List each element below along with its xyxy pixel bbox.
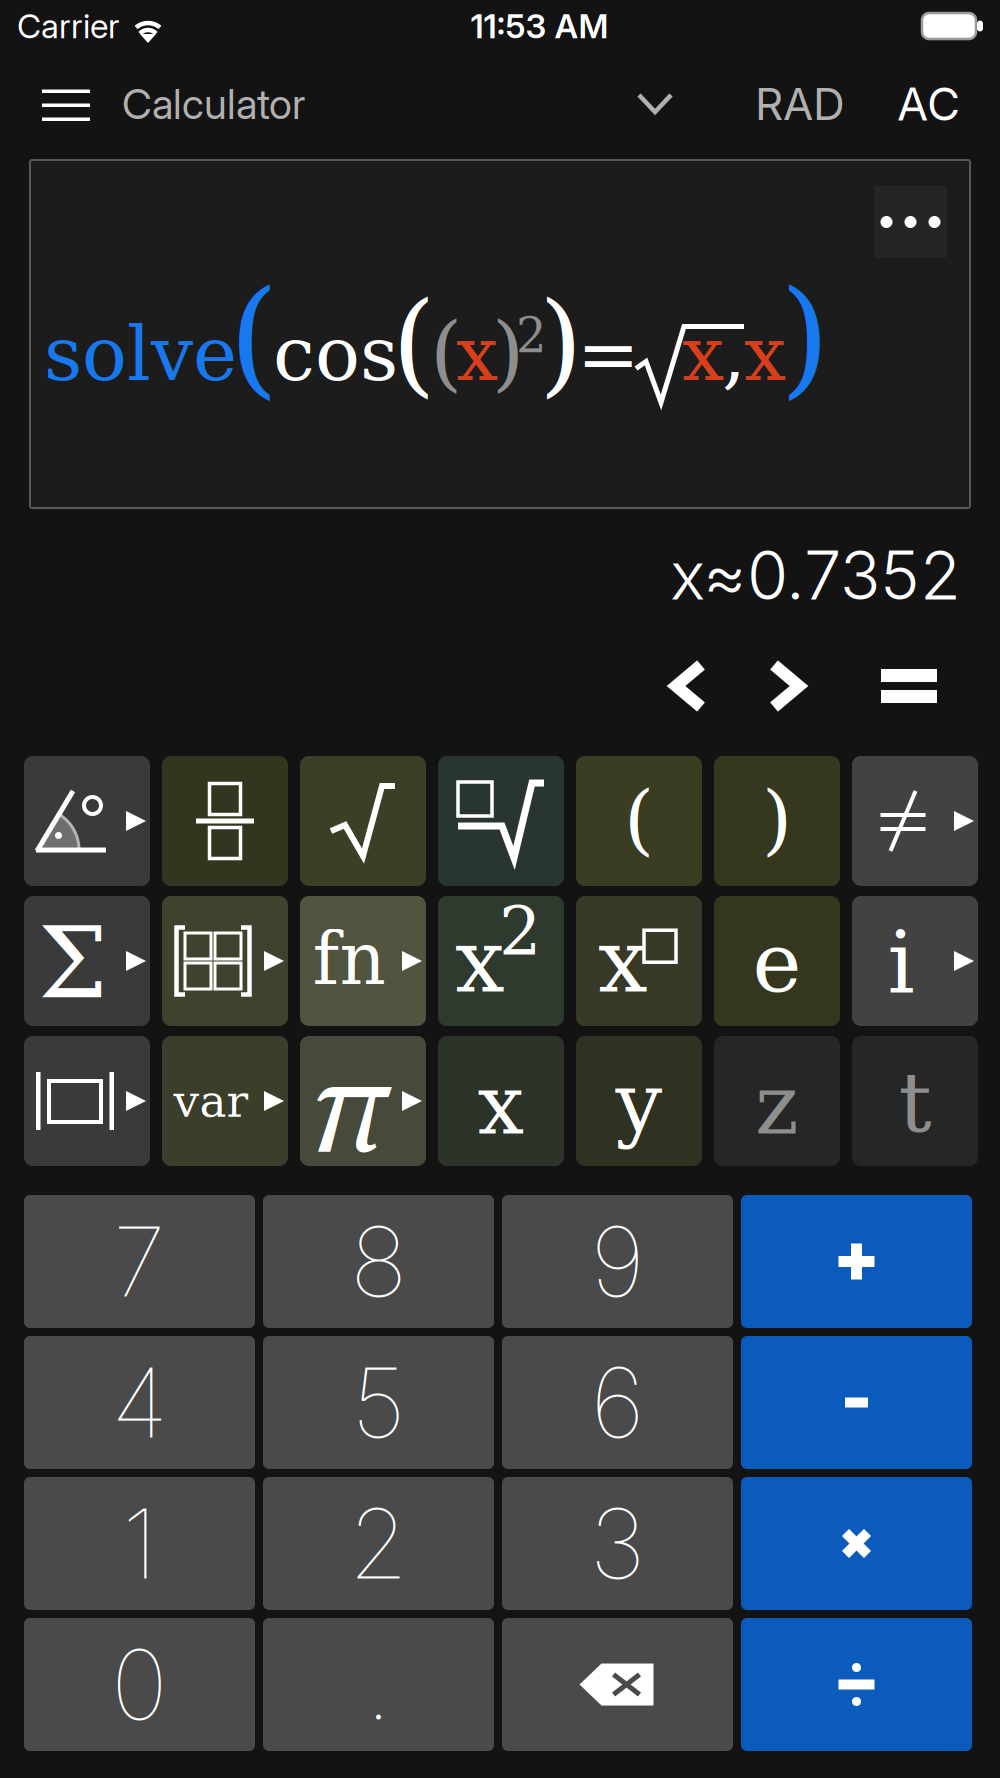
button[interactable]: RAD bbox=[743, 65, 857, 143]
button[interactable]: Divide bbox=[741, 1618, 972, 1751]
button[interactable]: 9 bbox=[502, 1195, 733, 1328]
staticText: ) bbox=[762, 774, 792, 864]
staticText: ( bbox=[392, 278, 436, 408]
staticText: 5 bbox=[351, 1344, 405, 1461]
button[interactable]: Multiply bbox=[741, 1477, 972, 1610]
staticText: ) bbox=[539, 278, 583, 408]
button[interactable]: i bbox=[852, 896, 978, 1026]
button[interactable]: Square root bbox=[300, 756, 426, 886]
button[interactable]: ( bbox=[576, 756, 702, 886]
button[interactable]: Calculator bbox=[104, 67, 323, 141]
button[interactable]: Add bbox=[741, 1195, 972, 1328]
button[interactable]: 5 bbox=[263, 1336, 494, 1469]
button[interactable]: ) bbox=[714, 756, 840, 886]
button[interactable]: 3 bbox=[502, 1477, 733, 1610]
button[interactable]: Subtract bbox=[741, 1336, 972, 1469]
staticText: 2 bbox=[499, 893, 541, 970]
staticText: ( bbox=[624, 774, 654, 864]
staticText: x≈0.7352 bbox=[670, 535, 961, 616]
button[interactable]: 6 bbox=[502, 1336, 733, 1469]
button[interactable]: Next bbox=[750, 641, 823, 731]
staticText: AC bbox=[897, 77, 960, 131]
staticText: RAD bbox=[755, 77, 845, 131]
button[interactable]: Menu bbox=[28, 74, 104, 134]
button[interactable]: 1 bbox=[24, 1477, 255, 1610]
staticText: i bbox=[887, 913, 914, 1013]
button[interactable]: 8 bbox=[263, 1195, 494, 1328]
staticText: cos bbox=[273, 311, 398, 397]
button[interactable]: e bbox=[714, 896, 840, 1026]
staticText: , bbox=[722, 311, 746, 397]
button[interactable]: var bbox=[162, 1036, 288, 1166]
button[interactable]: Σ bbox=[24, 896, 150, 1026]
staticText: y bbox=[615, 1055, 662, 1151]
staticText: 1 bbox=[122, 1485, 157, 1602]
staticText: e bbox=[752, 915, 801, 1011]
button[interactable]: . bbox=[263, 1618, 494, 1751]
staticText: fn bbox=[312, 917, 385, 1001]
button[interactable]: Angle bbox=[24, 756, 150, 886]
staticText: 0 bbox=[111, 1626, 168, 1743]
staticText: solve bbox=[44, 311, 237, 397]
button[interactable]: 4 bbox=[24, 1336, 255, 1469]
button[interactable]: y bbox=[576, 1036, 702, 1166]
staticText: ( bbox=[430, 304, 462, 400]
staticText: 3 bbox=[589, 1485, 645, 1602]
button[interactable]: 2 bbox=[263, 1477, 494, 1610]
button[interactable]: Not equal bbox=[852, 756, 978, 886]
button[interactable]: t bbox=[852, 1036, 978, 1166]
staticText: 11:53 AM bbox=[470, 6, 608, 46]
staticText: 2 bbox=[516, 308, 547, 363]
button[interactable]: Delete bbox=[502, 1618, 733, 1751]
staticText: 6 bbox=[590, 1344, 644, 1461]
staticText: = bbox=[577, 311, 640, 397]
staticText: 2 bbox=[348, 1485, 408, 1602]
staticText: ) bbox=[780, 262, 830, 411]
button[interactable]: More bbox=[874, 186, 947, 258]
button[interactable]: fn bbox=[300, 896, 426, 1026]
button[interactable]: π bbox=[300, 1036, 426, 1166]
staticText: x bbox=[477, 1057, 524, 1153]
staticText: x bbox=[598, 910, 648, 1012]
button[interactable]: 0 bbox=[24, 1618, 255, 1751]
button[interactable]: History bbox=[619, 75, 691, 133]
button[interactable]: x bbox=[438, 1036, 564, 1166]
staticText: x bbox=[682, 311, 724, 397]
staticText: Σ bbox=[38, 906, 108, 1020]
button[interactable]: z bbox=[714, 1036, 840, 1166]
staticText: t bbox=[898, 1055, 931, 1151]
button[interactable]: Fraction bbox=[162, 756, 288, 886]
button[interactable]: Previous bbox=[652, 641, 725, 731]
staticText: x bbox=[744, 311, 786, 397]
button[interactable]: Equals bbox=[863, 641, 955, 731]
staticText: 8 bbox=[350, 1203, 407, 1320]
staticText: z bbox=[755, 1057, 799, 1153]
button[interactable]: 7 bbox=[24, 1195, 255, 1328]
button[interactable]: x to the power bbox=[576, 896, 702, 1026]
staticText: x bbox=[455, 910, 505, 1012]
staticText: 7 bbox=[113, 1203, 166, 1320]
staticText: 9 bbox=[590, 1203, 644, 1320]
staticText: ) bbox=[492, 304, 524, 400]
button[interactable]: AC bbox=[885, 65, 972, 143]
button[interactable]: x squared bbox=[438, 896, 564, 1026]
button[interactable]: Nth root bbox=[438, 756, 564, 886]
staticText: . bbox=[365, 1626, 391, 1743]
staticText: var bbox=[173, 1075, 248, 1127]
button[interactable]: Matrix bbox=[162, 896, 288, 1026]
staticText: Carrier bbox=[17, 6, 119, 46]
staticText: ( bbox=[229, 262, 279, 411]
button[interactable]: Absolute value bbox=[24, 1036, 150, 1166]
staticText: π bbox=[310, 1023, 388, 1187]
staticText: 4 bbox=[111, 1344, 168, 1461]
staticText: Calculator bbox=[122, 79, 305, 129]
staticText: x bbox=[456, 311, 498, 397]
